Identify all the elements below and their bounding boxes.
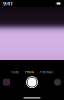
button[interactable]: VIDEO xyxy=(9,69,20,75)
button[interactable]: Take Photo xyxy=(25,76,38,89)
staticText: 9:41 xyxy=(3,0,13,7)
button[interactable]: PORTRAIT xyxy=(38,69,54,75)
staticText: PHOTO xyxy=(25,70,34,74)
staticText: PORTRAIT xyxy=(40,70,53,74)
staticText: VIDEO xyxy=(11,70,19,74)
button[interactable]: PHOTO xyxy=(23,69,35,75)
button[interactable]: Photo Library xyxy=(3,79,10,86)
button[interactable]: Switch Camera xyxy=(54,79,61,86)
